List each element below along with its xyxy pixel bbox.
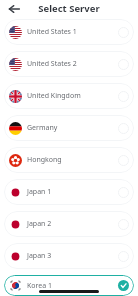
button[interactable]: Back — [4, 1, 24, 17]
staticText: Japan 1 — [27, 187, 118, 197]
button[interactable]: Germany — [4, 115, 134, 141]
button[interactable]: Korea 1 — [4, 275, 134, 296]
button[interactable]: Japan 3 — [4, 243, 134, 269]
button[interactable]: United Kingdom — [4, 83, 134, 109]
staticText: Select Server — [38, 2, 100, 15]
button[interactable]: United States 1 — [4, 19, 134, 45]
button[interactable]: Japan 2 — [4, 211, 134, 237]
button[interactable]: United States 2 — [4, 51, 134, 77]
staticText: United States 2 — [27, 59, 118, 69]
staticText: Japan 3 — [27, 251, 118, 261]
staticText: United States 1 — [27, 27, 118, 37]
button[interactable]: Japan 1 — [4, 179, 134, 205]
button[interactable]: Hongkong — [4, 147, 134, 173]
staticText: Hongkong — [27, 155, 118, 165]
staticText: Korea 1 — [27, 281, 118, 291]
staticText: Japan 2 — [27, 219, 118, 229]
staticText: United Kingdom — [27, 91, 118, 101]
staticText: Germany — [27, 123, 118, 133]
